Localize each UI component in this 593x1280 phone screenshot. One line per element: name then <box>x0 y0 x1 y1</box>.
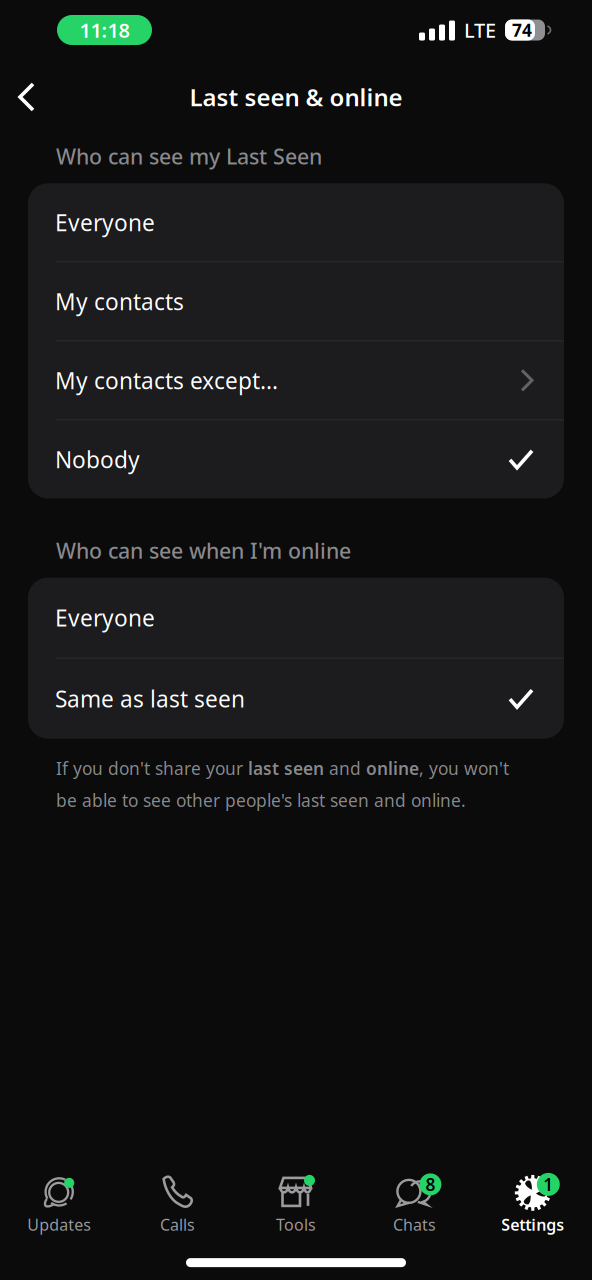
staticText: Who can see when I'm online <box>56 536 351 565</box>
staticText: My contacts <box>55 286 184 316</box>
button[interactable]: Tools <box>237 1175 355 1235</box>
staticText: Same as last seen <box>55 684 245 714</box>
staticText: My contacts except... <box>55 365 278 395</box>
staticText: 74 <box>512 18 532 41</box>
staticText: 11:18 <box>79 17 129 43</box>
staticText: 8 <box>425 1173 435 1196</box>
button[interactable]: Calls <box>118 1175 237 1235</box>
button[interactable]: Everyone <box>28 578 564 658</box>
staticText: Nobody <box>55 444 140 474</box>
button[interactable]: 8 <box>355 1175 474 1235</box>
staticText: LTE <box>464 17 496 43</box>
button[interactable]: 1 <box>474 1175 592 1235</box>
staticText: Tools <box>276 1214 316 1235</box>
staticText: Updates <box>27 1214 91 1235</box>
button[interactable]: Nobody <box>28 420 564 498</box>
staticText: Calls <box>160 1214 195 1235</box>
button[interactable]: My contacts <box>28 262 564 340</box>
staticText: Chats <box>393 1214 436 1235</box>
staticText: Everyone <box>55 207 155 237</box>
button[interactable]: Back <box>0 69 59 125</box>
staticText: Settings <box>501 1214 564 1235</box>
button[interactable]: My contacts except... <box>28 341 564 419</box>
button[interactable]: Updates <box>0 1175 118 1235</box>
staticText: Last seen & online <box>189 81 402 113</box>
staticText: be able to see other people's last seen … <box>56 789 466 812</box>
button[interactable]: Everyone <box>28 183 564 261</box>
staticText: Everyone <box>55 603 155 633</box>
staticText: Who can see my Last Seen <box>56 142 322 170</box>
staticText: 1 <box>543 1173 553 1196</box>
button[interactable]: Same as last seen <box>28 659 564 739</box>
staticText: If you don't share your last seen and on… <box>56 757 509 780</box>
